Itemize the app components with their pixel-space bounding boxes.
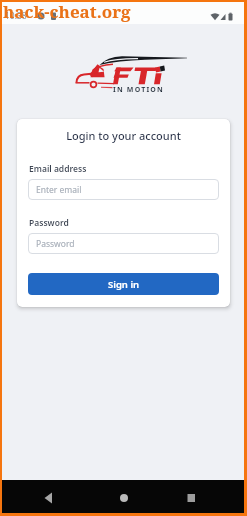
- staticText: Email address: [29, 163, 87, 175]
- staticText: hack-cheat.org: [3, 0, 131, 23]
- button[interactable]: Sign in: [28, 273, 219, 295]
- staticText: Password: [29, 217, 69, 229]
- staticText: Enter email: [36, 184, 82, 196]
- staticText: Login to your account: [17, 128, 230, 143]
- button[interactable]: [171, 480, 211, 514]
- staticText: IN MOTION: [113, 85, 164, 95]
- staticText: 10:38: [5, 10, 27, 22]
- staticText: Password: [36, 238, 75, 250]
- button[interactable]: Enter email: [28, 179, 219, 200]
- button[interactable]: [104, 480, 144, 514]
- button[interactable]: [28, 480, 68, 514]
- button[interactable]: Password: [28, 233, 219, 254]
- staticText: Sign in: [108, 278, 140, 291]
